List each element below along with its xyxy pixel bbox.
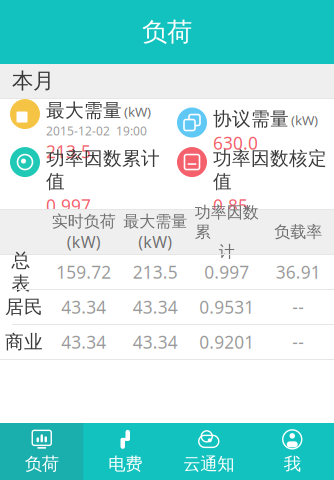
staticText: 电费	[108, 453, 142, 475]
staticText: 功率因数累计值	[46, 147, 160, 193]
staticText: 商业	[5, 330, 43, 353]
button[interactable]: 云通知	[167, 423, 250, 480]
button[interactable]: 负荷	[0, 423, 83, 480]
staticText: 0.9531	[199, 295, 254, 318]
staticText: (kW)	[124, 103, 151, 120]
staticText: 0.997	[46, 194, 91, 217]
staticText: --	[292, 295, 304, 318]
staticText: 213.5	[133, 260, 178, 283]
staticText: 功率因数累	[195, 202, 259, 242]
staticText: 0.997	[204, 260, 249, 283]
staticText: 计	[219, 242, 235, 261]
button[interactable]: 我	[250, 423, 334, 480]
staticText: 630.0	[213, 131, 258, 154]
staticText: (kW)	[67, 231, 101, 252]
staticText: 总 表	[11, 249, 36, 295]
staticText: 云通知	[183, 453, 234, 475]
staticText: (kW)	[291, 111, 318, 129]
staticText: 43.34	[133, 330, 178, 353]
staticText: 功率因数核定值	[213, 147, 327, 193]
staticText: 负荷	[25, 453, 59, 475]
staticText: 213.5	[46, 140, 91, 163]
staticText: 36.91	[276, 260, 321, 283]
staticText: 实时负荷	[52, 211, 116, 231]
staticText: 协议需量	[213, 107, 289, 130]
staticText: 0.9201	[199, 330, 254, 353]
button[interactable]: 电费	[83, 423, 167, 480]
staticText: 居民	[5, 295, 43, 318]
staticText: 本月	[12, 68, 54, 94]
staticText: --	[292, 330, 304, 353]
staticText: 最大需量	[123, 211, 187, 231]
staticText: 0.85	[213, 194, 248, 217]
staticText: 最大需量	[46, 99, 122, 122]
staticText: 负荷	[142, 16, 192, 47]
staticText: 2015-12-02 19:00	[46, 123, 147, 139]
staticText: (kW)	[138, 231, 172, 252]
staticText: 负载率	[274, 222, 322, 242]
staticText: 43.34	[61, 330, 106, 353]
staticText: 43.34	[61, 295, 106, 318]
staticText: 我	[284, 453, 301, 475]
staticText: 159.72	[56, 260, 111, 283]
staticText: 43.34	[133, 295, 178, 318]
